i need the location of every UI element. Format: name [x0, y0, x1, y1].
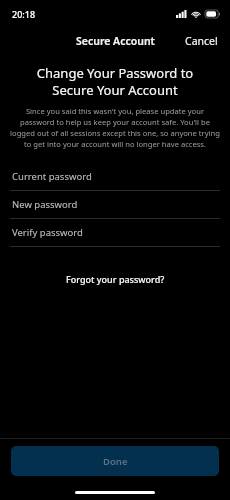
- staticText: Verify password: [12, 226, 83, 239]
- button[interactable]: New password: [0, 191, 230, 219]
- staticText: Done: [103, 455, 128, 468]
- button[interactable]: Cancel: [173, 30, 230, 52]
- staticText: Forgot your password?: [66, 273, 165, 285]
- staticText: 20:18: [12, 8, 36, 20]
- button[interactable]: Done: [11, 446, 219, 476]
- button[interactable]: Current password: [0, 163, 230, 191]
- staticText: Current password: [12, 170, 92, 183]
- button[interactable]: Forgot your password?: [52, 267, 179, 291]
- staticText: Change Your Password to Secure Your Acco…: [16, 64, 214, 99]
- staticText: Secure Account: [76, 34, 155, 48]
- staticText: New password: [12, 198, 78, 211]
- staticText: Since you said this wasn't you, please u…: [9, 106, 221, 149]
- button[interactable]: Verify password: [0, 219, 230, 247]
- staticText: Cancel: [185, 34, 218, 48]
